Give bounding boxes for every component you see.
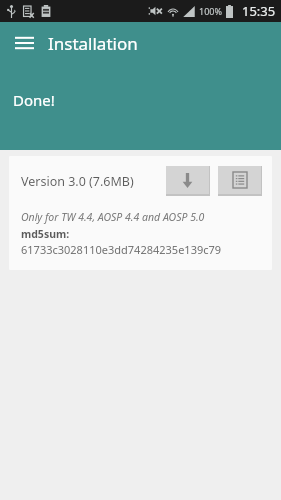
- button[interactable]: Open navigation drawer: [6, 25, 42, 61]
- staticText: 100%: [199, 5, 222, 17]
- staticText: 15:35: [242, 2, 276, 20]
- staticText: Installation: [48, 32, 138, 55]
- staticText: Done!: [13, 90, 55, 110]
- staticText: Only for TW 4.4, AOSP 4.4 and AOSP 5.0: [21, 210, 205, 224]
- staticText: Version 3.0 (7.6MB): [21, 173, 166, 190]
- staticText: 61733c3028110e3dd74284235e139c79: [21, 242, 222, 257]
- button[interactable]: Changelog: [218, 166, 261, 194]
- button[interactable]: Download: [166, 166, 209, 194]
- staticText: md5sum:: [21, 227, 70, 241]
